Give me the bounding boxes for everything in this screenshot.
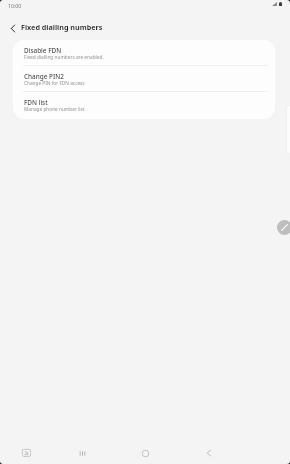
staticText: Fixed dialling numbers: [21, 22, 103, 32]
button[interactable]: Home: [134, 442, 156, 464]
staticText: Change PIN for FDN access: [24, 80, 85, 86]
button[interactable]: Hide keyboard: [15, 442, 37, 464]
staticText: 10:00: [8, 2, 22, 9]
button[interactable]: Recents: [71, 442, 93, 464]
button[interactable]: Disable FDN: [13, 40, 275, 66]
button[interactable]: Back: [198, 442, 220, 464]
button[interactable]: FDN list: [13, 92, 275, 118]
button[interactable]: Change PIN2: [13, 66, 275, 92]
staticText: Fixed dialling numbers are enabled.: [24, 54, 104, 60]
staticText: Disable FDN: [24, 46, 62, 55]
staticText: FDN list: [24, 98, 48, 107]
staticText: Change PIN2: [24, 72, 64, 81]
button[interactable]: Back: [6, 21, 20, 35]
staticText: Manage phone number list: [24, 106, 85, 112]
button[interactable]: Edit: [277, 220, 290, 235]
